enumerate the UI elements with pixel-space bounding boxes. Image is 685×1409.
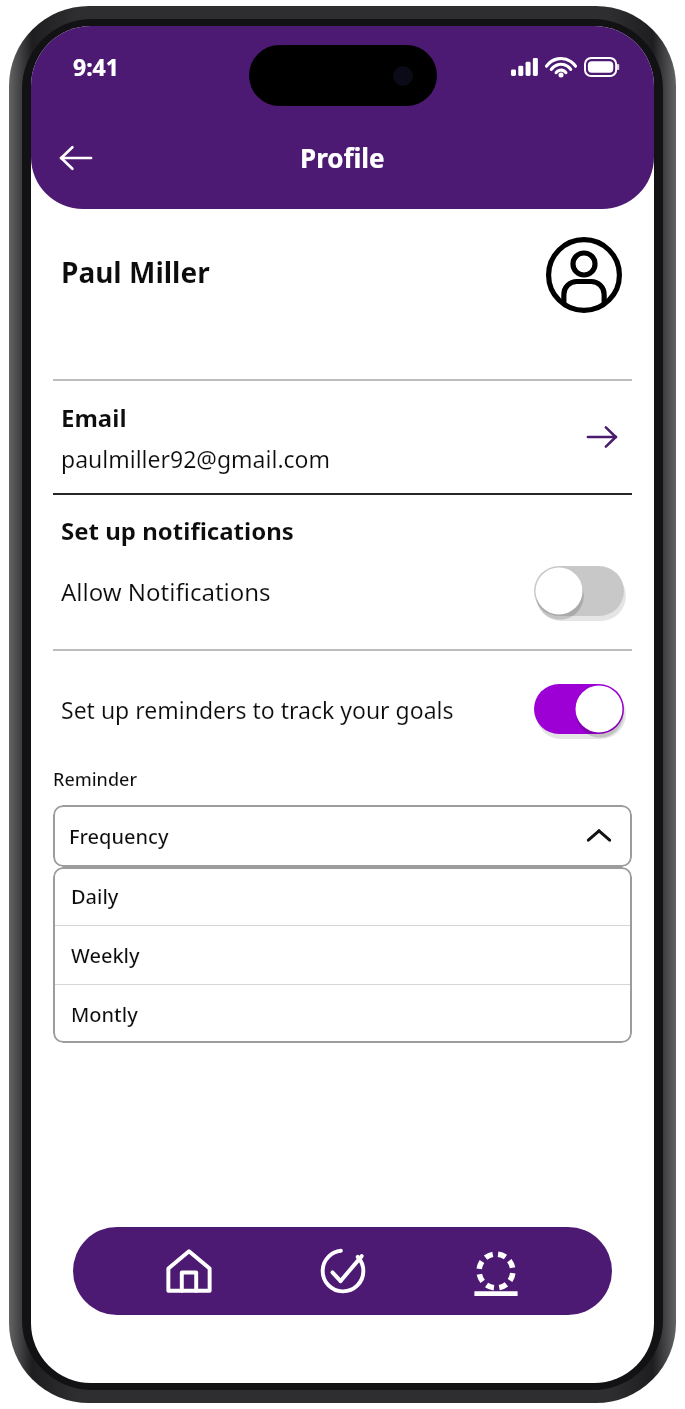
staticText: Reminder: [53, 767, 138, 792]
button[interactable]: Allow Notifications: [31, 547, 654, 635]
staticText: Set up reminders to track your goals: [61, 694, 534, 725]
button[interactable]: Toggle off: [534, 566, 624, 616]
button[interactable]: Profile picture: [544, 235, 624, 315]
button[interactable]: Montly: [53, 985, 632, 1043]
staticText: Weekly: [71, 942, 140, 969]
button[interactable]: Toggle on: [534, 684, 624, 734]
staticText: paulmiller92@gmail.com: [61, 443, 331, 474]
staticText: Email: [61, 401, 127, 434]
button[interactable]: Profile: [459, 1234, 533, 1308]
other: Edit email: [580, 415, 624, 459]
staticText: Frequency: [69, 823, 169, 850]
staticText: Set up notifications: [61, 514, 294, 547]
button[interactable]: Weekly: [53, 926, 632, 984]
staticText: Allow Notifications: [61, 575, 534, 608]
button[interactable]: Daily: [53, 867, 632, 925]
staticText: Daily: [71, 883, 119, 910]
button[interactable]: Back: [47, 129, 105, 187]
button[interactable]: Tasks: [306, 1234, 380, 1308]
button[interactable]: Home: [152, 1234, 226, 1308]
staticText: Montly: [71, 1001, 138, 1028]
staticText: Profile: [300, 140, 385, 175]
staticText: 9:41: [73, 51, 119, 82]
button[interactable]: Email: [31, 381, 654, 493]
staticText: Paul Miller: [61, 253, 544, 291]
button[interactable]: Set up reminders to track your goals: [31, 651, 654, 767]
button[interactable]: Frequency: [53, 805, 632, 867]
